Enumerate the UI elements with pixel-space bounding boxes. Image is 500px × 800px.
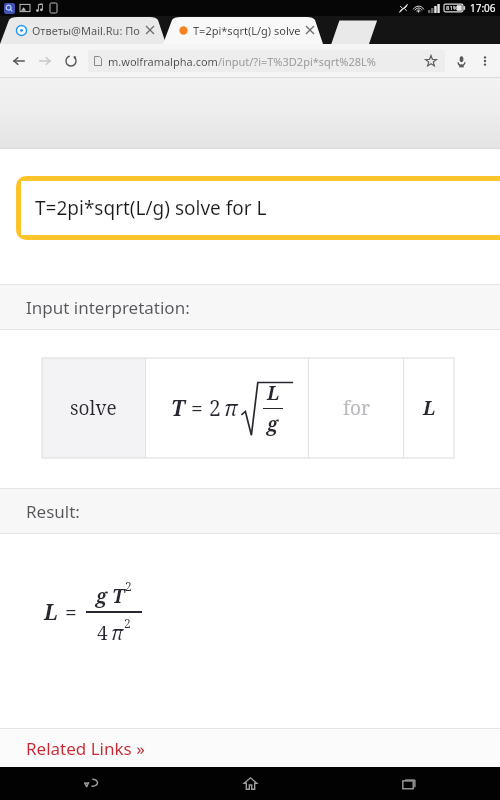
button[interactable]: Close tab — [143, 23, 157, 37]
button[interactable]: Tab — [322, 16, 380, 44]
button[interactable]: Home — [228, 767, 272, 800]
staticText: T — [171, 394, 185, 423]
staticText: L — [44, 598, 58, 627]
staticText: = — [65, 598, 77, 627]
button[interactable]: Back — [8, 50, 30, 72]
staticText: T=2pi*sqrt(L/g) solve for L — [35, 195, 267, 221]
staticText: 2 — [125, 578, 132, 594]
button[interactable]: Recent apps — [387, 767, 431, 800]
button[interactable]: More options — [474, 50, 496, 72]
button[interactable]: Forward — [34, 50, 56, 72]
button[interactable]: Ответы@Mail.Ru: По — [0, 16, 166, 44]
staticText: 4 — [97, 620, 108, 646]
button[interactable]: Related Links » — [0, 729, 500, 767]
button[interactable]: Back — [69, 767, 113, 800]
staticText: Result: — [26, 500, 80, 523]
button[interactable]: m.wolframalpha.com — [88, 50, 445, 72]
staticText: π — [111, 620, 124, 646]
staticText: L — [423, 395, 436, 421]
button[interactable]: Bookmark — [423, 53, 439, 69]
button[interactable]: Reload — [60, 50, 82, 72]
staticText: 81% — [446, 4, 458, 12]
button[interactable]: Voice search — [450, 50, 472, 72]
staticText: solve — [70, 395, 117, 421]
staticText: Ответы@Mail.Ru: По — [32, 23, 140, 38]
staticText: T — [112, 583, 125, 609]
staticText: 2 — [124, 615, 131, 631]
staticText: Input interpretation: — [26, 296, 190, 319]
button[interactable]: T=2pi*sqrt(L/g) solve — [163, 16, 323, 44]
staticText: Related Links » — [26, 737, 145, 760]
staticText: m.wolframalpha.com — [108, 54, 218, 69]
staticText: π — [224, 394, 238, 423]
staticText: g — [96, 583, 108, 609]
staticText: g — [267, 411, 279, 437]
staticText: 17:06 — [470, 1, 496, 15]
staticText: = — [191, 394, 203, 423]
staticText: /input/?i=T%3D2pi*sqrt%28L% — [218, 54, 376, 69]
staticText: L — [267, 380, 280, 406]
button[interactable]: T=2pi*sqrt(L/g) solve for L — [21, 181, 500, 235]
staticText: 2 — [209, 394, 221, 423]
staticText: T=2pi*sqrt(L/g) solve — [193, 23, 300, 38]
staticText: for — [343, 395, 370, 421]
button[interactable]: Close tab — [303, 23, 317, 37]
